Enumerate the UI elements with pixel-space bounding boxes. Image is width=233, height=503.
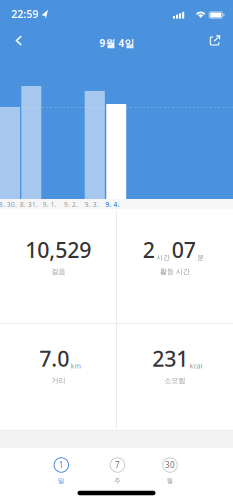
staticText: 7 [115,460,120,470]
staticText: 거리 [51,376,65,385]
staticText: 231 [152,344,188,373]
staticText: 9. 3. [85,200,99,209]
staticText: kcal [190,361,203,370]
staticText: 8. 30. [0,200,17,209]
staticText: 9월 4일 [99,36,134,50]
staticText: 소모됨 [164,376,185,385]
staticText: 활동 시간 [160,267,190,276]
button[interactable]: 7 [99,448,135,503]
staticText: 10,529 [25,235,91,264]
staticText: 7.0 [39,344,69,373]
staticText: 22:59 [11,6,38,21]
staticText: 30 [165,460,175,470]
button[interactable]: 1 [43,448,79,503]
button[interactable]: Back [0,30,36,60]
staticText: 걸음 [51,267,65,276]
button[interactable]: 30 [152,448,188,503]
staticText: 시간 [156,253,170,262]
staticText: 9. 4. [106,200,120,209]
staticText: 분 [197,253,204,262]
staticText: km [71,361,81,370]
staticText: 2 [143,235,155,264]
staticText: 일 [58,477,65,485]
staticText: 9. 2. [64,200,78,209]
button[interactable]: Share [197,30,233,60]
staticText: 월 [166,477,173,485]
staticText: 07 [172,235,196,264]
staticText: 9. 1. [43,200,57,209]
staticText: 8. 31. [20,200,38,209]
staticText: 주 [114,477,121,485]
staticText: 1 [59,460,64,470]
